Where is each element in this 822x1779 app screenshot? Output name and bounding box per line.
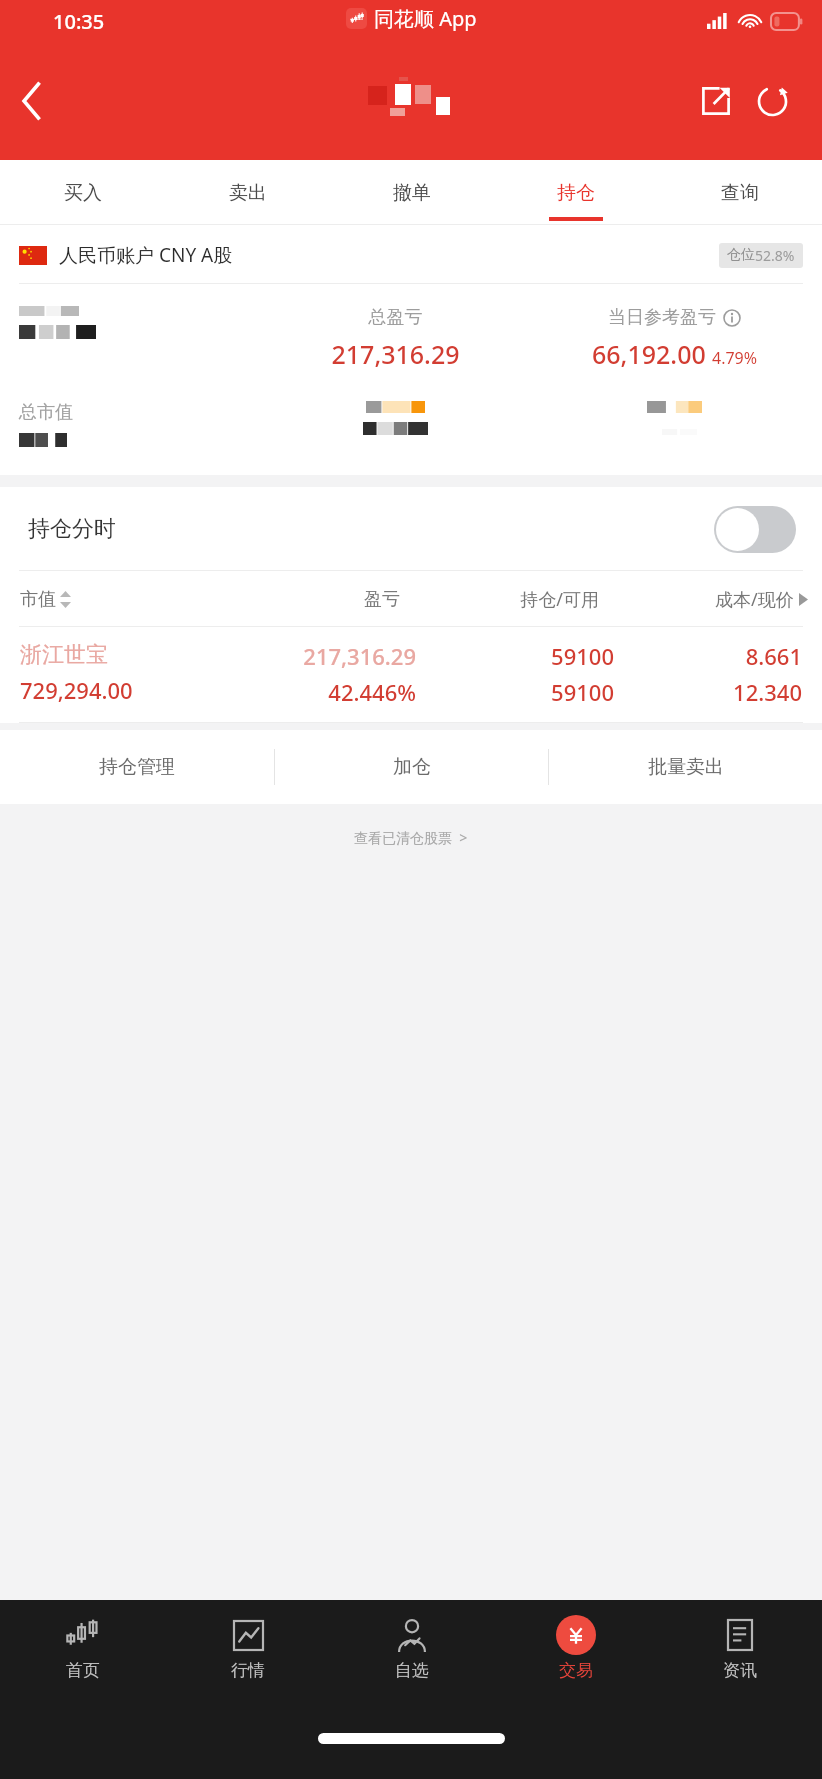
staticText: 持仓 (557, 181, 595, 205)
staticText: 217,316.29 (264, 337, 527, 371)
button[interactable]: 自选 (330, 1600, 494, 1700)
button[interactable]: 市值 (20, 588, 210, 611)
staticText: 10:35 (53, 8, 105, 35)
staticText: 当日参考盈亏 (608, 306, 716, 329)
staticText: 42.446% (218, 677, 416, 707)
staticText: 持仓分时 (28, 515, 116, 543)
staticText: 729,294.00 (20, 675, 133, 705)
staticText: 行情 (231, 1660, 265, 1681)
staticText: 买入 (64, 181, 102, 205)
staticText: 59100 (416, 677, 614, 707)
button[interactable]: 持仓分时 toggle (714, 506, 796, 553)
staticText: 资讯 (723, 1660, 757, 1681)
button[interactable]: 持仓 (494, 160, 658, 225)
staticText: 卖出 (229, 181, 267, 205)
button[interactable]: 行情 (165, 1600, 330, 1700)
button[interactable]: 首页 (0, 1600, 165, 1700)
staticText: 总盈亏 (264, 306, 527, 329)
button[interactable]: 查询 (658, 160, 822, 225)
staticText: 撤单 (393, 181, 431, 205)
button[interactable]: 卖出 (165, 160, 330, 225)
button[interactable]: 批量卖出 (549, 730, 822, 804)
button[interactable]: 撤单 (330, 160, 494, 225)
staticText: 8.661 (614, 641, 802, 671)
button[interactable]: 买入 (0, 160, 165, 225)
button[interactable]: 查看已清仓股票 > (0, 813, 822, 862)
staticText: 成本/现价 (715, 587, 794, 612)
button[interactable]: 浙江世宝 (0, 627, 822, 723)
staticText: 自选 (395, 1660, 429, 1681)
staticText: 浙江世宝 (20, 641, 108, 669)
staticText: 总市值 (19, 401, 73, 424)
staticText: 仓位 (727, 246, 755, 264)
staticText: 盈亏 (210, 588, 400, 611)
staticText: 持仓/可用 (400, 587, 599, 612)
staticText: 交易 (559, 1660, 593, 1681)
staticText: 同花顺 App (374, 5, 477, 32)
staticText: 加仓 (393, 755, 431, 779)
staticText: 217,316.29 (218, 641, 416, 671)
staticText: 批量卖出 (648, 755, 724, 779)
staticText: 持仓管理 (99, 755, 175, 779)
staticText: 4.79% (712, 347, 758, 369)
button[interactable]: Share (688, 73, 744, 129)
staticText: 查询 (721, 181, 759, 205)
button[interactable]: 交易 (494, 1600, 658, 1700)
button[interactable]: 加仓 (275, 730, 548, 804)
staticText: 12.340 (614, 677, 802, 707)
button[interactable]: 人民币账户 CNY A股 (0, 225, 822, 283)
staticText: 市值 (20, 588, 56, 611)
staticText: 52.8% (755, 246, 795, 265)
button[interactable]: 资讯 (658, 1600, 822, 1700)
staticText: 查看已清仓股票 > (354, 828, 468, 847)
staticText: 首页 (66, 1660, 100, 1681)
button[interactable]: Refresh (744, 73, 800, 129)
button[interactable]: 持仓管理 (0, 730, 274, 804)
button[interactable]: Back (0, 69, 64, 133)
staticText: 人民币账户 CNY A股 (59, 242, 233, 268)
staticText: 59100 (416, 641, 614, 671)
staticText: 66,192.00 (592, 337, 706, 371)
